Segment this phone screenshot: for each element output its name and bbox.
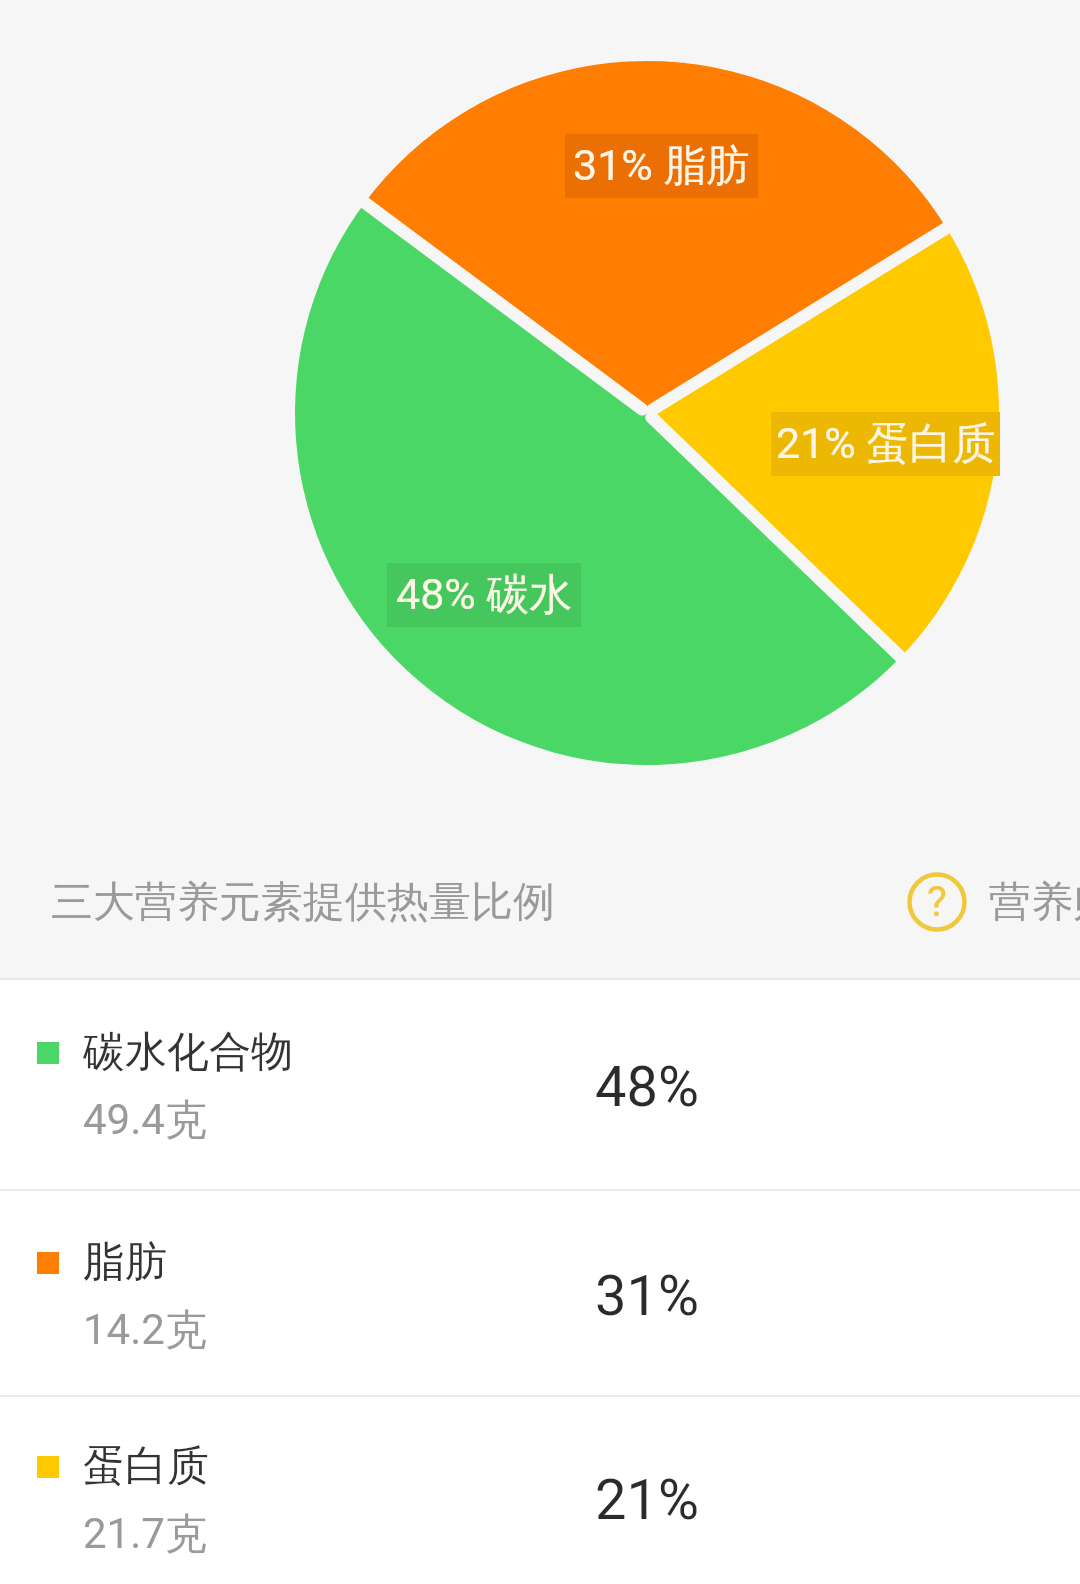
staticText: 21% 蛋白质: [776, 417, 996, 471]
staticText: 48%: [595, 1054, 699, 1120]
staticText: 蛋白质: [83, 1440, 209, 1493]
staticText: 三大营养元素提供热量比例: [51, 876, 555, 929]
staticText: 21.7克: [83, 1508, 207, 1561]
staticText: 49.4克: [83, 1094, 207, 1147]
staticText: 31%: [595, 1263, 699, 1329]
staticText: 31% 脂肪: [573, 139, 750, 193]
staticText: 48% 碳水: [396, 568, 573, 622]
staticText: 21%: [595, 1467, 699, 1533]
button[interactable]: 脂肪: [0, 1191, 1080, 1395]
button[interactable]: 碳水化合物: [0, 980, 1080, 1189]
staticText: 碳水化合物: [83, 1026, 293, 1079]
button[interactable]: 营养师解读: [905, 870, 1080, 934]
staticText: 脂肪: [83, 1236, 167, 1289]
button[interactable]: 蛋白质: [0, 1397, 1080, 1584]
staticText: 营养师解读: [989, 876, 1080, 929]
staticText: 14.2克: [83, 1304, 207, 1357]
staticText: ?: [927, 877, 947, 926]
